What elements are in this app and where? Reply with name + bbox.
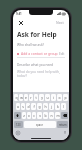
staticText: q <box>15 95 18 100</box>
button[interactable]: x <box>27 112 31 119</box>
staticText: Who shall we ask? <box>17 43 44 47</box>
staticText: w <box>20 95 23 100</box>
staticText: j <box>51 104 52 109</box>
staticText: l <box>63 104 64 109</box>
button[interactable]: r <box>29 94 33 101</box>
staticText: z <box>23 113 25 118</box>
staticText: x <box>28 113 30 118</box>
staticText: v <box>39 113 41 118</box>
button[interactable]: d <box>26 103 30 110</box>
button[interactable]: What do you need help with, today? <box>13 70 69 77</box>
button[interactable]: 123 <box>14 121 23 128</box>
button[interactable]: w <box>19 94 23 101</box>
button[interactable]: t <box>34 94 38 101</box>
button[interactable]: k <box>55 103 60 110</box>
button[interactable]: y <box>39 94 44 101</box>
button[interactable]: l <box>61 103 66 110</box>
staticText: k <box>57 104 59 109</box>
button[interactable]: space <box>24 121 56 128</box>
button[interactable]: return <box>57 121 68 128</box>
staticText: Edit <box>59 52 65 56</box>
staticText: space <box>36 123 44 127</box>
button[interactable]: c <box>32 112 36 119</box>
button[interactable]: n <box>49 112 54 119</box>
button[interactable]: h <box>43 103 48 110</box>
staticText: s <box>22 104 24 109</box>
staticText: return <box>59 123 67 127</box>
button[interactable]: o <box>57 94 62 101</box>
button[interactable]: Close <box>17 19 25 27</box>
staticText: h <box>44 104 47 109</box>
staticText: g <box>38 104 41 109</box>
button[interactable]: Backspace <box>61 112 68 119</box>
staticText: Describe what you need <box>17 63 54 67</box>
staticText: 123 <box>16 123 21 127</box>
button[interactable]: i <box>51 94 56 101</box>
button[interactable]: Dictate <box>62 130 67 135</box>
staticText: r <box>30 95 32 100</box>
staticText: d <box>27 104 30 109</box>
button[interactable]: Add a contact or group <box>13 50 69 57</box>
staticText: c <box>33 113 35 118</box>
staticText: Add a contact or group <box>21 51 58 56</box>
button[interactable]: z <box>22 112 26 119</box>
staticText: o <box>58 95 61 100</box>
button[interactable]: Shift <box>14 112 21 119</box>
button[interactable]: u <box>45 94 50 101</box>
button[interactable]: e <box>24 94 28 101</box>
button[interactable]: v <box>37 112 42 119</box>
button[interactable]: p <box>63 94 68 101</box>
staticText: i <box>53 95 54 100</box>
button[interactable]: a <box>16 103 20 110</box>
staticText: a <box>17 104 19 109</box>
staticText: f <box>33 104 35 109</box>
staticText: n <box>50 113 53 118</box>
button[interactable]: Next <box>55 20 65 25</box>
button[interactable]: f <box>31 103 36 110</box>
staticText: 9:41 <box>16 12 22 16</box>
staticText: p <box>64 95 67 100</box>
staticText: e <box>25 95 27 100</box>
button[interactable]: j <box>49 103 54 110</box>
staticText: Next <box>56 20 64 25</box>
button[interactable]: b <box>43 112 48 119</box>
staticText: u <box>46 95 49 100</box>
button[interactable]: Emoji <box>15 130 20 135</box>
staticText: t <box>35 95 37 100</box>
button[interactable]: g <box>37 103 42 110</box>
staticText: y <box>41 95 43 100</box>
staticText: What do you need help with, today? <box>17 70 65 77</box>
button[interactable]: s <box>21 103 25 110</box>
staticText: Ask for Help <box>17 30 57 39</box>
button[interactable]: m <box>55 112 60 119</box>
button[interactable]: q <box>14 94 18 101</box>
staticText: m <box>56 113 60 118</box>
staticText: b <box>44 113 47 118</box>
